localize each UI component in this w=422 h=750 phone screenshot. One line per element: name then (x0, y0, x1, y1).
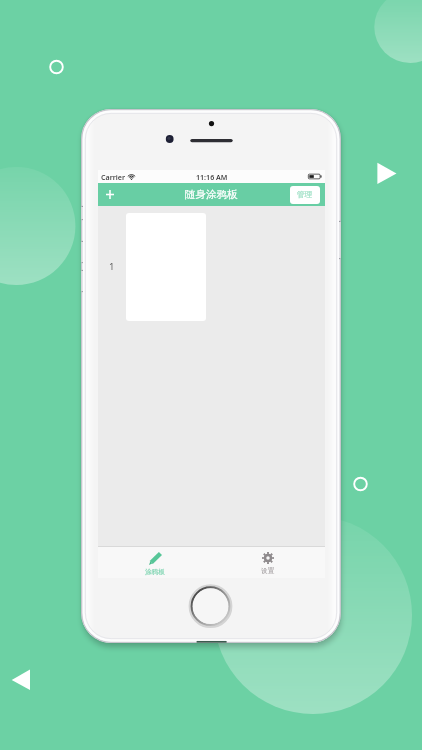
staticText: Carrier (101, 172, 126, 182)
button[interactable]: 管理 (290, 186, 320, 204)
staticText: 设置 (261, 567, 275, 575)
staticText: 管理 (297, 190, 313, 200)
staticText: 随身涂鸦板 (185, 188, 238, 201)
button[interactable]: 涂鸦板 (98, 547, 211, 578)
staticText: 1 (109, 260, 115, 273)
staticText: 涂鸦板 (145, 568, 165, 576)
button[interactable]: 1 (98, 206, 325, 327)
staticText: 11:16 AM (196, 172, 228, 182)
button[interactable]: Add (98, 183, 121, 206)
button[interactable]: 设置 (211, 547, 325, 578)
